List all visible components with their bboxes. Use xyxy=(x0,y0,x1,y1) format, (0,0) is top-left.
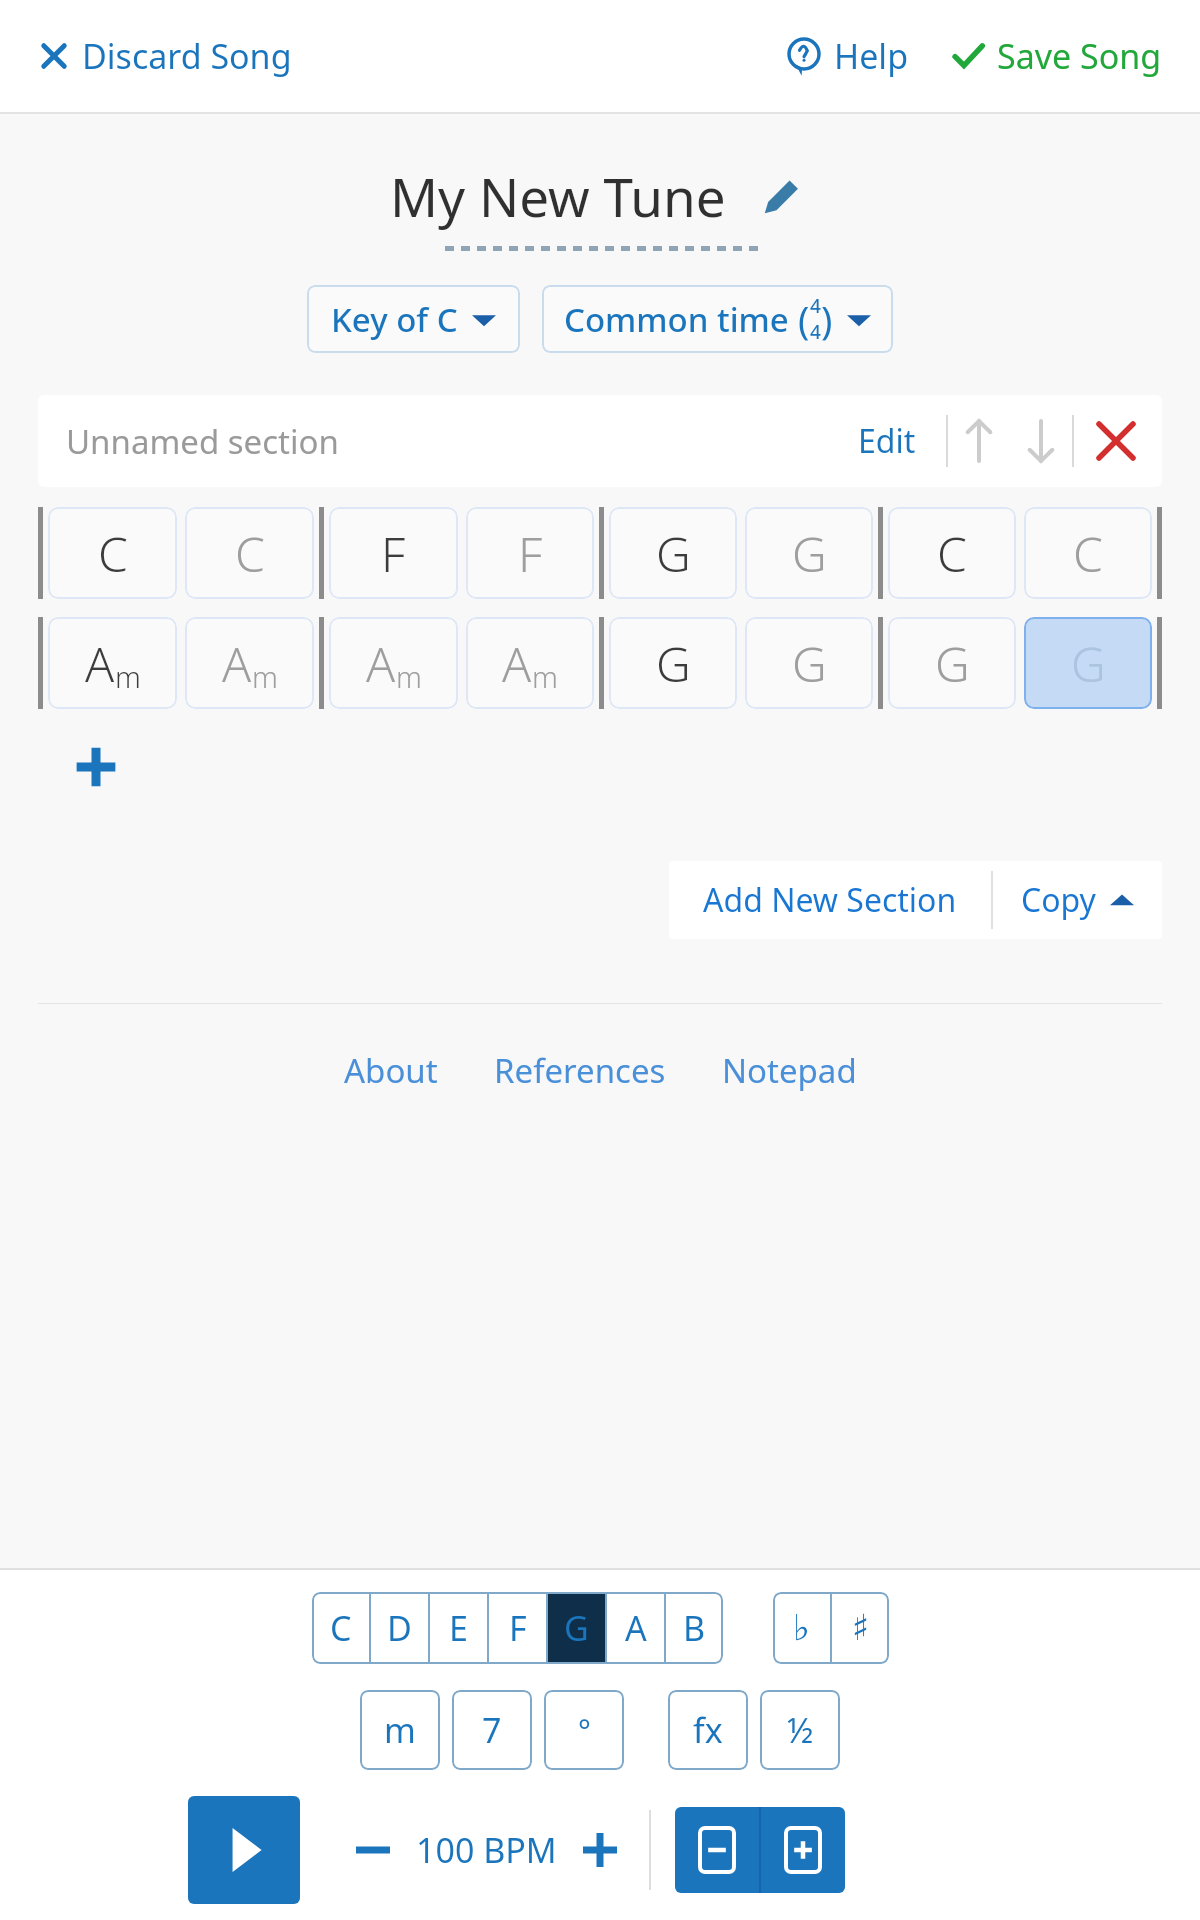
staticText: Common time xyxy=(564,297,798,342)
button[interactable]: Copy xyxy=(993,861,1162,939)
button[interactable]: Common time xyxy=(542,285,893,353)
staticText: References xyxy=(494,1048,666,1093)
staticText: 100 BPM xyxy=(416,1827,557,1873)
staticText: m xyxy=(384,1707,416,1753)
button[interactable]: m xyxy=(360,1690,440,1770)
staticText: 7 xyxy=(482,1707,502,1753)
button[interactable]: A xyxy=(185,617,314,709)
staticText: C xyxy=(937,521,967,586)
staticText: C xyxy=(330,1605,352,1651)
staticText: 4 xyxy=(810,293,821,319)
button[interactable]: Key of C xyxy=(307,285,520,353)
staticText: Add New Section xyxy=(703,878,957,922)
button[interactable]: F xyxy=(329,507,458,599)
staticText: m xyxy=(532,657,558,696)
button[interactable]: B xyxy=(666,1592,723,1664)
button[interactable]: Zoom in xyxy=(761,1807,845,1893)
staticText: C xyxy=(1073,521,1103,586)
staticText: G xyxy=(935,631,970,696)
staticText: Discard Song xyxy=(82,33,292,79)
button[interactable]: Help xyxy=(780,25,915,87)
button[interactable]: Move section down xyxy=(1010,410,1072,472)
staticText: E xyxy=(449,1605,468,1651)
staticText: Unnamed section xyxy=(66,419,339,464)
button[interactable]: G xyxy=(1024,617,1152,709)
staticText: fx xyxy=(693,1707,723,1753)
staticText: ( xyxy=(798,293,810,345)
button[interactable]: About xyxy=(334,1038,448,1103)
button[interactable]: D xyxy=(371,1592,428,1664)
staticText: G xyxy=(1071,631,1106,696)
button[interactable]: C xyxy=(48,507,177,599)
staticText: G xyxy=(564,1605,589,1651)
staticText: A xyxy=(366,631,396,696)
staticText: G xyxy=(656,631,691,696)
button[interactable]: ♯ xyxy=(832,1592,889,1664)
button[interactable]: G xyxy=(745,507,873,599)
button[interactable]: Add New Section xyxy=(669,861,991,939)
button[interactable]: Discard Song xyxy=(32,25,298,87)
staticText: ) xyxy=(821,293,833,345)
staticText: Copy xyxy=(1021,878,1096,922)
button[interactable]: Delete section xyxy=(1074,399,1158,483)
button[interactable]: C xyxy=(185,507,314,599)
button[interactable]: C xyxy=(312,1592,369,1664)
button[interactable]: G xyxy=(609,617,737,709)
staticText: ♭ xyxy=(793,1607,810,1649)
button[interactable]: Edit xyxy=(848,409,926,473)
button[interactable]: Increase tempo xyxy=(571,1821,629,1879)
staticText: ♯ xyxy=(852,1607,870,1649)
button[interactable]: ° xyxy=(544,1690,624,1770)
button[interactable]: 7 xyxy=(452,1690,532,1770)
button[interactable]: Edit title xyxy=(754,168,810,224)
staticText: A xyxy=(222,631,252,696)
button[interactable]: Play xyxy=(188,1796,300,1904)
staticText: m xyxy=(115,657,141,696)
staticText: D xyxy=(387,1605,412,1651)
button[interactable]: E xyxy=(430,1592,487,1664)
staticText: Save Song xyxy=(997,33,1162,79)
staticText: Notepad xyxy=(722,1048,857,1093)
staticText: ° xyxy=(578,1710,591,1751)
staticText: B xyxy=(683,1605,706,1651)
staticText: F xyxy=(518,521,543,586)
button[interactable]: A xyxy=(48,617,177,709)
button[interactable]: Move section up xyxy=(948,410,1010,472)
staticText: About xyxy=(344,1048,438,1093)
staticText: My New Tune xyxy=(390,160,726,232)
button[interactable]: References xyxy=(484,1038,676,1103)
button[interactable]: ½ xyxy=(760,1690,840,1770)
button[interactable]: fx xyxy=(668,1690,748,1770)
button[interactable]: F xyxy=(489,1592,546,1664)
button[interactable]: A xyxy=(466,617,594,709)
staticText: F xyxy=(381,521,406,586)
button[interactable]: A xyxy=(329,617,458,709)
button[interactable]: Add bar xyxy=(58,729,134,805)
button[interactable]: F xyxy=(466,507,594,599)
staticText: Key of C xyxy=(331,297,458,342)
staticText: F xyxy=(509,1605,527,1651)
button[interactable]: G xyxy=(609,507,737,599)
button[interactable]: Unnamed section xyxy=(38,395,1162,487)
button[interactable]: G xyxy=(745,617,873,709)
button[interactable]: Zoom out xyxy=(675,1807,759,1893)
button[interactable]: A xyxy=(607,1592,664,1664)
staticText: C xyxy=(235,521,265,586)
staticText: G xyxy=(656,521,691,586)
button[interactable]: C xyxy=(1024,507,1152,599)
button[interactable]: Notepad xyxy=(712,1038,867,1103)
staticText: A xyxy=(85,631,115,696)
staticText: Help xyxy=(834,33,909,79)
button[interactable]: Decrease tempo xyxy=(344,1821,402,1879)
button[interactable]: Save Song xyxy=(945,25,1168,87)
staticText: 4 xyxy=(810,319,821,345)
button[interactable]: G xyxy=(888,617,1016,709)
staticText: m xyxy=(396,657,422,696)
staticText: A xyxy=(502,631,532,696)
staticText: Edit xyxy=(858,419,916,463)
button[interactable]: C xyxy=(888,507,1016,599)
staticText: m xyxy=(252,657,278,696)
button[interactable]: G xyxy=(548,1592,605,1664)
staticText: ½ xyxy=(787,1707,814,1753)
button[interactable]: ♭ xyxy=(773,1592,830,1664)
